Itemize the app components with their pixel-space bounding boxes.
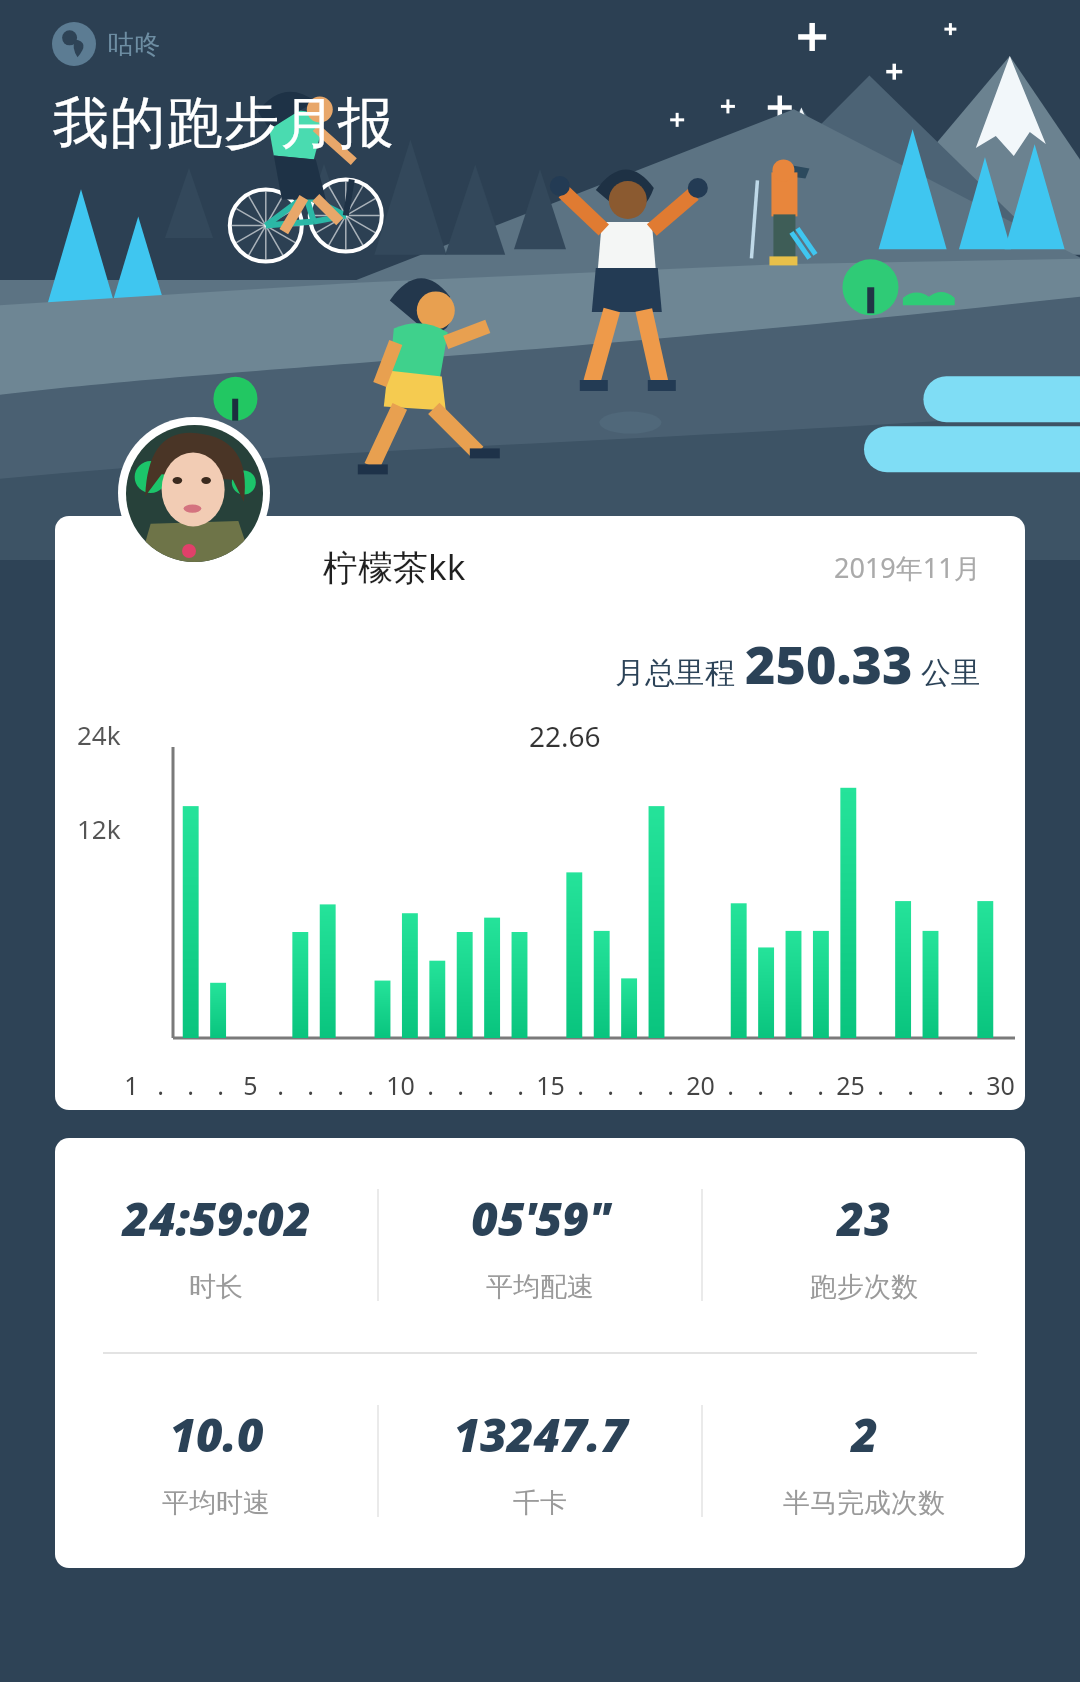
- button[interactable]: Codoon logo: [52, 22, 160, 66]
- staticText: .: [817, 1068, 824, 1102]
- staticText: .: [967, 1068, 974, 1102]
- staticText: 咕咚: [108, 28, 160, 61]
- staticText: 月总里程: [615, 654, 735, 692]
- button[interactable]: 2: [703, 1354, 1025, 1568]
- staticText: 23: [837, 1187, 891, 1250]
- button[interactable]: 24:59:02: [55, 1138, 377, 1352]
- staticText: .: [157, 1068, 164, 1102]
- staticText: .: [187, 1068, 194, 1102]
- staticText: 12k: [77, 811, 121, 846]
- staticText: 10.0: [169, 1403, 264, 1466]
- staticText: 22.66: [529, 717, 601, 755]
- staticText: 平均配速: [486, 1270, 594, 1304]
- staticText: 25: [836, 1068, 865, 1102]
- staticText: .: [517, 1068, 524, 1102]
- staticText: .: [907, 1068, 914, 1102]
- staticText: 跑步次数: [810, 1270, 918, 1304]
- staticText: 千卡: [513, 1486, 567, 1520]
- staticText: 半马完成次数: [783, 1486, 945, 1520]
- staticText: .: [787, 1068, 794, 1102]
- staticText: 平均时速: [162, 1486, 270, 1520]
- staticText: .: [607, 1068, 614, 1102]
- staticText: .: [637, 1068, 644, 1102]
- staticText: 时长: [189, 1270, 243, 1304]
- staticText: .: [877, 1068, 884, 1102]
- staticText: 15: [536, 1068, 565, 1102]
- staticText: 5: [243, 1068, 258, 1102]
- staticText: .: [667, 1068, 674, 1102]
- button[interactable]: 05'59": [379, 1138, 701, 1352]
- staticText: .: [277, 1068, 284, 1102]
- staticText: 2019年11月: [834, 549, 981, 586]
- button[interactable]: Profile photo: [118, 417, 270, 569]
- staticText: .: [337, 1068, 344, 1102]
- staticText: .: [307, 1068, 314, 1102]
- button[interactable]: 10.0: [55, 1354, 377, 1568]
- staticText: 1: [124, 1068, 139, 1102]
- staticText: .: [757, 1068, 764, 1102]
- staticText: .: [577, 1068, 584, 1102]
- staticText: 我的跑步月报: [52, 88, 394, 159]
- staticText: 柠檬茶kk: [323, 543, 466, 591]
- staticText: .: [427, 1068, 434, 1102]
- staticText: 24:59:02: [122, 1187, 311, 1250]
- staticText: .: [487, 1068, 494, 1102]
- staticText: 20: [686, 1068, 715, 1102]
- staticText: .: [937, 1068, 944, 1102]
- staticText: 公里: [921, 654, 981, 692]
- staticText: .: [457, 1068, 464, 1102]
- staticText: 24k: [77, 717, 121, 752]
- staticText: .: [217, 1068, 224, 1102]
- staticText: 2: [851, 1403, 878, 1466]
- staticText: 10: [386, 1068, 415, 1102]
- staticText: 30: [986, 1068, 1015, 1102]
- button[interactable]: 23: [703, 1138, 1025, 1352]
- staticText: 13247.7: [453, 1403, 628, 1466]
- staticText: 05'59": [471, 1187, 610, 1250]
- staticText: .: [367, 1068, 374, 1102]
- staticText: .: [727, 1068, 734, 1102]
- staticText: 250.33: [745, 628, 913, 699]
- button[interactable]: 13247.7: [379, 1354, 701, 1568]
